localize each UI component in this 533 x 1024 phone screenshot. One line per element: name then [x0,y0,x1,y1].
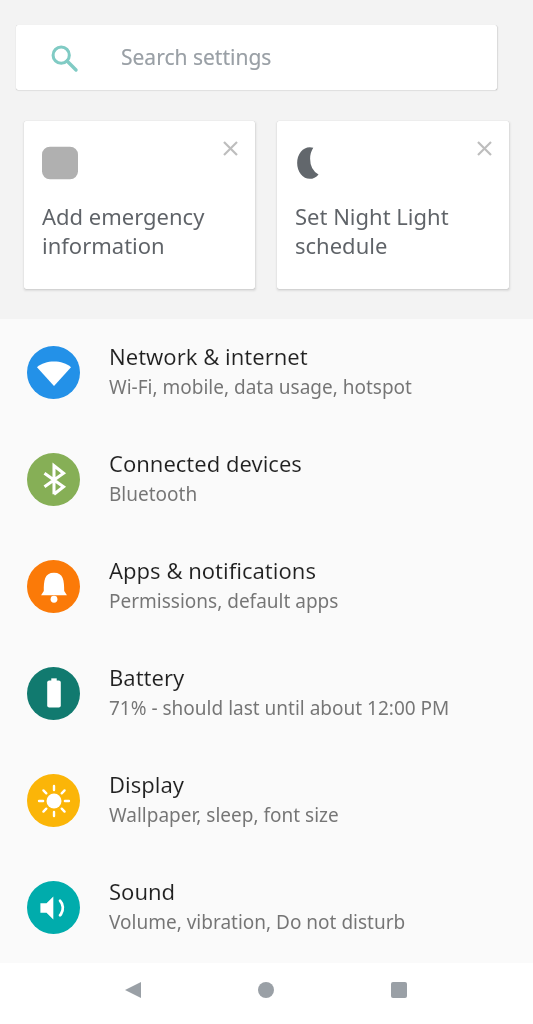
button[interactable]: Dismiss [473,137,495,159]
button[interactable]: Search settings [16,25,497,90]
button[interactable]: Display [0,747,533,854]
button[interactable]: Network & internet [0,319,533,426]
staticText: Sound [109,876,176,906]
button[interactable]: Add emergency information [24,121,255,289]
button[interactable]: Battery [0,640,533,747]
staticText: Add emergency information [42,201,205,260]
button[interactable]: Back [110,967,156,1013]
button[interactable]: Set Night Light schedule [277,121,509,289]
staticText: Volume, vibration, Do not disturb [109,909,406,935]
staticText: Display [109,769,185,799]
staticText: Search settings [121,43,272,72]
staticText: Bluetooth [109,481,198,507]
staticText: Permissions, default apps [109,588,339,614]
button[interactable]: Apps & notifications [0,533,533,640]
button[interactable]: Connected devices [0,426,533,533]
button[interactable]: Home [243,967,289,1013]
staticText: Connected devices [109,448,302,478]
staticText: 71% - should last until about 12:00 PM [109,695,450,721]
button[interactable]: Sound [0,854,533,961]
button[interactable]: Recents [376,967,422,1013]
button[interactable]: Dismiss [219,137,241,159]
staticText: Wi-Fi, mobile, data usage, hotspot [109,374,412,400]
staticText: Battery [109,662,185,692]
staticText: Wallpaper, sleep, font size [109,802,339,828]
staticText: Network & internet [109,341,308,371]
staticText: Apps & notifications [109,555,316,585]
staticText: Set Night Light schedule [295,201,449,260]
